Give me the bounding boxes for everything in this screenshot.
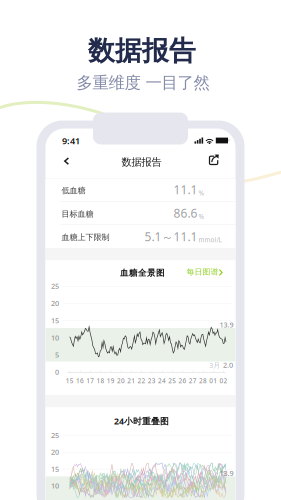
staticText: 0 bbox=[55, 367, 59, 377]
staticText: 21 bbox=[127, 376, 135, 385]
staticText: 目标血糖 bbox=[61, 209, 93, 219]
staticText: 26 bbox=[179, 376, 187, 385]
staticText: 数据报告 bbox=[88, 34, 196, 68]
staticText: % bbox=[199, 188, 205, 197]
staticText: 15 bbox=[66, 376, 74, 385]
staticText: 19 bbox=[107, 376, 115, 385]
staticText: 25 bbox=[51, 281, 59, 291]
staticText: 20 bbox=[51, 298, 59, 308]
staticText: 20 bbox=[117, 376, 125, 385]
staticText: 86.6 bbox=[174, 205, 198, 221]
staticText: 2.0 bbox=[223, 360, 233, 370]
staticText: 25 bbox=[168, 376, 176, 385]
staticText: 01 bbox=[209, 376, 217, 385]
staticText: mmol/L bbox=[199, 235, 222, 244]
staticText: 3月 bbox=[209, 360, 220, 370]
staticText: 10 bbox=[51, 333, 59, 343]
staticText: 20 bbox=[51, 447, 59, 457]
staticText: 9:41 bbox=[62, 135, 80, 147]
staticText: 10 bbox=[51, 481, 59, 491]
staticText: 15 bbox=[51, 464, 59, 474]
staticText: 25 bbox=[51, 430, 59, 440]
staticText: 13.9 bbox=[219, 320, 233, 330]
staticText: 23 bbox=[148, 376, 156, 385]
button[interactable]: Back bbox=[57, 151, 77, 171]
staticText: 28 bbox=[199, 376, 207, 385]
staticText: % bbox=[199, 212, 205, 221]
staticText: 5.1～11.1 bbox=[145, 228, 198, 245]
button[interactable]: 每日图谱 bbox=[186, 264, 228, 280]
staticText: 18 bbox=[96, 376, 104, 385]
staticText: 11.1 bbox=[174, 182, 198, 198]
staticText: 血糖全景图 bbox=[120, 267, 165, 278]
staticText: 数据报告 bbox=[121, 156, 161, 169]
staticText: 24小时重叠图 bbox=[114, 415, 169, 427]
staticText: 13.9 bbox=[219, 468, 233, 478]
staticText: 15 bbox=[51, 315, 59, 325]
button[interactable]: Share bbox=[204, 150, 224, 170]
staticText: 02 bbox=[220, 376, 228, 385]
staticText: 低血糖 bbox=[61, 185, 85, 196]
staticText: 5 bbox=[55, 350, 59, 360]
staticText: 16 bbox=[76, 376, 84, 385]
staticText: 24 bbox=[158, 376, 166, 385]
staticText: 多重维度 一目了然 bbox=[76, 72, 209, 93]
staticText: 每日图谱 bbox=[186, 267, 218, 277]
staticText: 17 bbox=[86, 376, 94, 385]
staticText: 22 bbox=[137, 376, 145, 385]
staticText: 27 bbox=[189, 376, 197, 385]
staticText: 血糖上下限制 bbox=[61, 232, 109, 243]
